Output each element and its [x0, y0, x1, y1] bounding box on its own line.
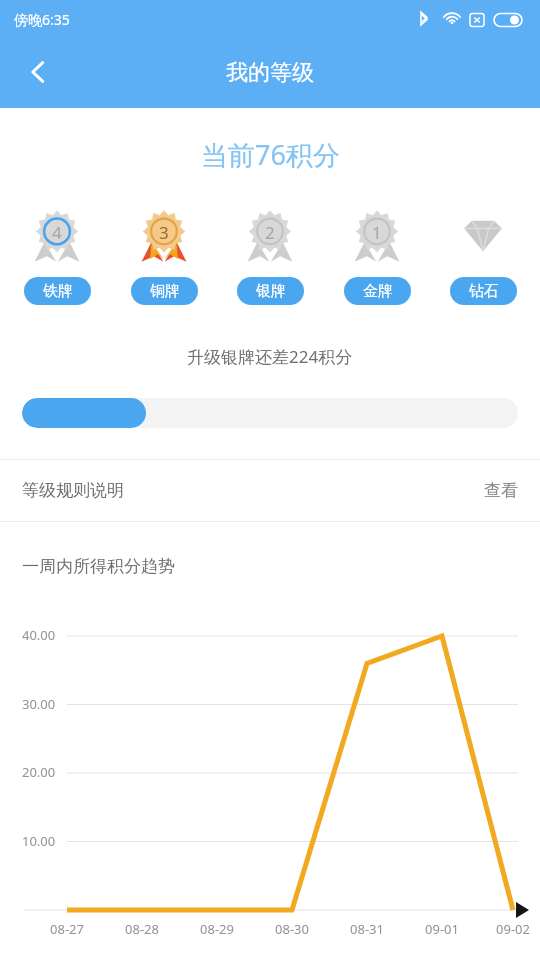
- staticText: 08-28: [125, 920, 159, 938]
- staticText: 一周内所得积分趋势: [22, 556, 175, 577]
- staticText: 钻石: [469, 282, 499, 301]
- button[interactable]: 2: [227, 205, 313, 305]
- staticText: 傍晚6:35: [14, 10, 70, 29]
- staticText: 09-01: [425, 920, 459, 938]
- staticText: 金牌: [363, 282, 393, 301]
- staticText: 08-27: [50, 920, 84, 938]
- button[interactable]: 钻石: [440, 205, 526, 305]
- staticText: 08-30: [275, 920, 309, 938]
- button[interactable]: 3: [121, 205, 207, 305]
- staticText: 1: [372, 221, 382, 244]
- button[interactable]: 1: [334, 205, 420, 305]
- staticText: 08-29: [200, 920, 234, 938]
- staticText: 等级规则说明: [22, 480, 124, 501]
- staticText: 40.00: [22, 626, 56, 644]
- button[interactable]: Back: [4, 38, 72, 106]
- staticText: 20.00: [22, 763, 56, 781]
- staticText: 铁牌: [43, 282, 73, 301]
- staticText: 30.00: [22, 695, 56, 713]
- staticText: 3: [159, 221, 169, 244]
- staticText: 2: [265, 221, 275, 244]
- staticText: 我的等级: [0, 59, 540, 87]
- staticText: 10.00: [22, 832, 56, 850]
- staticText: 08-31: [350, 920, 384, 938]
- staticText: 4: [52, 221, 62, 244]
- staticText: 银牌: [256, 282, 286, 301]
- staticText: 升级银牌还差224积分: [187, 345, 353, 368]
- staticText: 铜牌: [150, 282, 180, 301]
- staticText: 09-02: [496, 920, 530, 938]
- button[interactable]: 4: [14, 205, 100, 305]
- staticText: 当前76积分: [201, 136, 340, 173]
- button[interactable]: 等级规则说明: [0, 460, 540, 521]
- staticText: 查看: [484, 480, 518, 501]
